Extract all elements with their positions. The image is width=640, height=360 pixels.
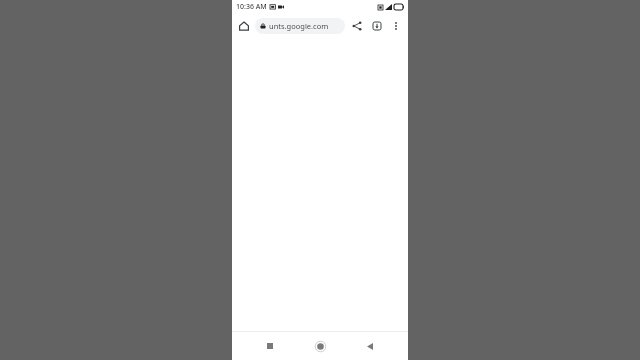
button[interactable]: Home — [308, 334, 332, 358]
button[interactable]: More options — [387, 17, 405, 35]
staticText: unts.google.com — [269, 21, 329, 31]
button[interactable]: unts.google.com — [255, 18, 345, 34]
staticText: 10:36 AM — [236, 2, 267, 12]
button[interactable]: Back — [358, 334, 382, 358]
button[interactable]: Home — [235, 17, 253, 35]
button[interactable]: Share — [348, 17, 366, 35]
button[interactable]: Recent apps — [258, 334, 282, 358]
button[interactable]: Downloads — [368, 17, 386, 35]
